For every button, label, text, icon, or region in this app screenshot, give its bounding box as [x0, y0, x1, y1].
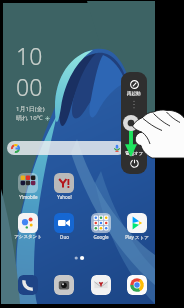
staticText: アシスタント: [14, 234, 42, 240]
button[interactable]: Chrome: [127, 275, 147, 295]
staticText: 10: [16, 40, 43, 71]
staticText: 電源オフ: [125, 151, 144, 157]
button[interactable]: Duo: [50, 213, 78, 240]
staticText: 晴れ 10℃: [16, 114, 43, 122]
button[interactable]: Mail: [91, 275, 111, 295]
button[interactable]: Yahoo!: [50, 173, 78, 200]
button[interactable]: Y!mobile: [14, 173, 42, 200]
button[interactable]: Play ストア: [123, 213, 151, 240]
button[interactable]: Google: [87, 213, 115, 240]
button[interactable]: Phone: [18, 275, 38, 295]
staticText: Yahoo!: [57, 194, 72, 200]
staticText: 1月1日(金): [16, 105, 45, 113]
button[interactable]: 10: [16, 40, 50, 122]
staticText: Y!mobile: [19, 194, 38, 200]
staticText: 00: [16, 71, 43, 102]
button[interactable]: Camera: [54, 275, 74, 295]
button[interactable]: Power off: [130, 159, 139, 168]
staticText: Google: [93, 234, 109, 240]
staticText: Play ストア: [125, 234, 149, 240]
staticText: Duo: [60, 234, 69, 240]
button[interactable]: アシスタント: [14, 213, 42, 240]
button[interactable]: Restart: [130, 80, 139, 89]
button[interactable]: [7, 141, 125, 155]
staticText: 再起動: [127, 91, 141, 97]
